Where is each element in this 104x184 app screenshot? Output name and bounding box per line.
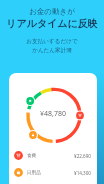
staticText: ¥14,300 — [74, 170, 91, 176]
staticText: お支払いするだけで — [26, 38, 78, 45]
staticText: ¥22,690 — [74, 153, 91, 159]
button[interactable]: 日用品 — [9, 164, 97, 181]
staticText: お金の動きが — [29, 7, 75, 16]
staticText: 日用品 — [27, 170, 41, 176]
staticText: リアルタイムに反映 — [6, 17, 98, 30]
staticText: かんたん家計簿 — [32, 47, 72, 54]
staticText: 食費 — [27, 153, 37, 159]
button[interactable]: 食費 — [9, 147, 97, 164]
staticText: ¥48,780 — [40, 109, 66, 119]
